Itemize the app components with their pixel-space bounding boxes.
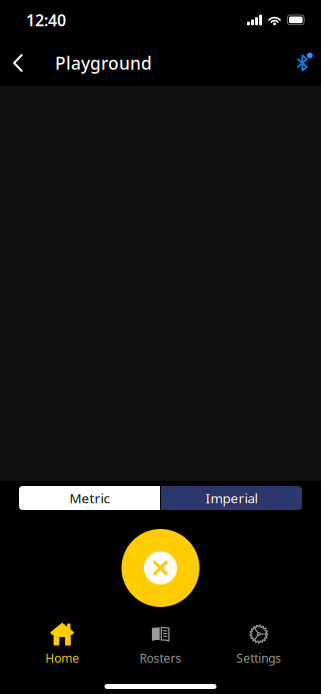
button[interactable]: Bluetooth	[288, 41, 317, 85]
staticText: Home	[45, 650, 79, 666]
button[interactable]: Home	[13, 623, 111, 665]
button[interactable]: Stop	[121, 529, 199, 607]
button[interactable]: Settings	[210, 623, 308, 665]
button[interactable]: Rosters	[111, 623, 210, 665]
staticText: 12:40	[26, 9, 66, 31]
staticText: Settings	[236, 650, 281, 666]
button[interactable]: Imperial	[161, 486, 302, 510]
staticText: Metric	[69, 489, 109, 507]
button[interactable]: Metric	[19, 486, 160, 510]
staticText: Imperial	[205, 489, 257, 507]
staticText: Rosters	[139, 650, 181, 666]
staticText: Playground	[55, 51, 152, 74]
button[interactable]: Back	[4, 41, 32, 85]
